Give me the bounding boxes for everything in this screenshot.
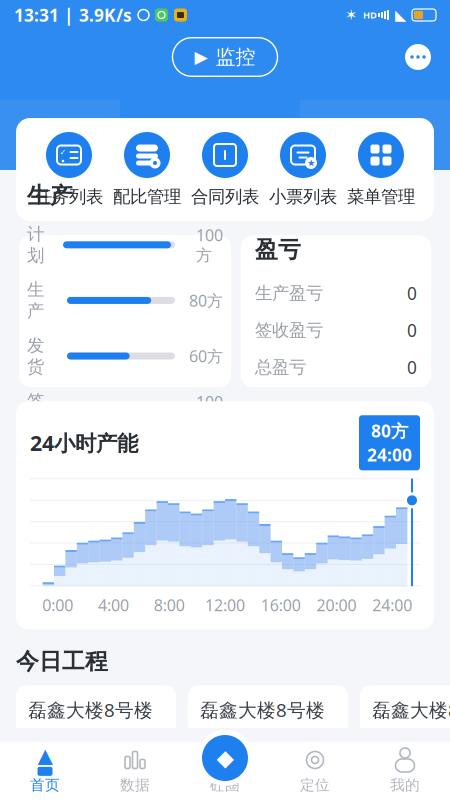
staticText: 磊鑫大楼8号楼 bbox=[372, 697, 450, 722]
staticText: 合同列表 bbox=[191, 186, 259, 207]
staticText: 签收盈亏 bbox=[255, 320, 323, 341]
staticText: 菜单管理 bbox=[347, 186, 415, 207]
staticText: 计划 bbox=[28, 732, 66, 755]
staticText: 20:00 bbox=[316, 594, 356, 615]
button[interactable]: 合同列表 bbox=[186, 132, 264, 207]
button[interactable]: ▲ bbox=[0, 742, 90, 800]
staticText: 数据 bbox=[120, 776, 150, 794]
button[interactable]: 磊鑫大楼8号楼 bbox=[360, 685, 450, 795]
staticText: 磊鑫大楼8号楼 bbox=[200, 697, 325, 722]
staticText: 生产盈亏 bbox=[255, 282, 323, 304]
button[interactable]: 配比管理 bbox=[108, 132, 186, 207]
staticText: ▶ bbox=[194, 47, 207, 67]
button[interactable]: 定位 bbox=[270, 742, 360, 800]
staticText: 0 bbox=[407, 356, 417, 379]
staticText: 首页 bbox=[30, 776, 60, 794]
staticText: 任务列表 bbox=[35, 186, 103, 207]
staticText: 13:31 | 3.9K/s bbox=[14, 3, 132, 26]
button[interactable]: 消息 bbox=[398, 37, 438, 77]
staticText: ◆ bbox=[216, 745, 233, 771]
staticText: 生产 bbox=[27, 182, 73, 209]
staticText: 计划 bbox=[27, 224, 44, 266]
staticText: 8:00 bbox=[154, 594, 185, 615]
staticText: 发货 bbox=[200, 766, 238, 789]
staticText: 定位 bbox=[300, 776, 330, 794]
staticText: 12.0 bbox=[126, 765, 164, 790]
staticText: 12.0 bbox=[126, 731, 164, 756]
button[interactable]: 砼圈 bbox=[197, 730, 253, 786]
staticText: 总盈亏 bbox=[255, 357, 306, 378]
staticText: 12.0 bbox=[298, 765, 336, 790]
staticText: 砼圈 bbox=[210, 776, 240, 794]
staticText: 生产 bbox=[27, 279, 44, 322]
staticText: 我的 bbox=[390, 776, 420, 794]
staticText: 80方 bbox=[189, 290, 223, 311]
staticText: 12:00 bbox=[205, 594, 245, 615]
staticText: 配比管理 bbox=[113, 186, 181, 207]
staticText: 100方 bbox=[196, 391, 223, 432]
staticText: 发货 bbox=[27, 335, 44, 377]
staticText: 4:00 bbox=[98, 594, 129, 615]
button[interactable]: ★ bbox=[264, 132, 342, 207]
staticText: 100方 bbox=[196, 224, 223, 265]
staticText: ▲ bbox=[37, 744, 52, 767]
staticText: 计划 bbox=[372, 732, 410, 755]
staticText: 12.0 bbox=[298, 731, 336, 756]
button[interactable]: 磊鑫大楼8号楼 bbox=[16, 685, 176, 795]
staticText: 磊鑫大楼8号楼 bbox=[28, 697, 153, 722]
staticText: 今日工程 bbox=[16, 648, 108, 675]
button[interactable]: ✓ bbox=[30, 132, 108, 207]
staticText: 发货 bbox=[372, 766, 410, 789]
staticText: 24:00 bbox=[367, 443, 412, 466]
staticText: 24:00 bbox=[372, 594, 412, 615]
staticText: ✶ bbox=[345, 7, 357, 23]
staticText: HD bbox=[363, 9, 377, 21]
staticText: 发货 bbox=[28, 766, 66, 789]
staticText: ✓ bbox=[59, 148, 66, 157]
staticText: 16:00 bbox=[261, 594, 301, 615]
staticText: 80方 bbox=[371, 419, 408, 442]
staticText: 盈亏 bbox=[255, 236, 301, 264]
button[interactable]: 数据 bbox=[90, 742, 180, 800]
staticText: 0 bbox=[407, 319, 417, 342]
button[interactable]: 我的 bbox=[360, 742, 450, 800]
staticText: 0 bbox=[407, 282, 417, 305]
staticText: 0:00 bbox=[42, 594, 73, 615]
staticText: 监控 bbox=[215, 45, 255, 69]
button[interactable]: 菜单管理 bbox=[342, 132, 420, 207]
staticText: ★ bbox=[307, 158, 315, 168]
staticText: 60方 bbox=[189, 345, 223, 367]
button[interactable]: ▶ bbox=[172, 38, 277, 76]
button[interactable]: 磊鑫大楼8号楼 bbox=[188, 685, 348, 795]
staticText: 计划 bbox=[200, 732, 238, 755]
staticText: 小票列表 bbox=[269, 186, 337, 207]
staticText: ◣ bbox=[395, 7, 406, 23]
staticText: 24小时产能 bbox=[30, 429, 138, 457]
staticText: 签收 bbox=[27, 390, 44, 433]
